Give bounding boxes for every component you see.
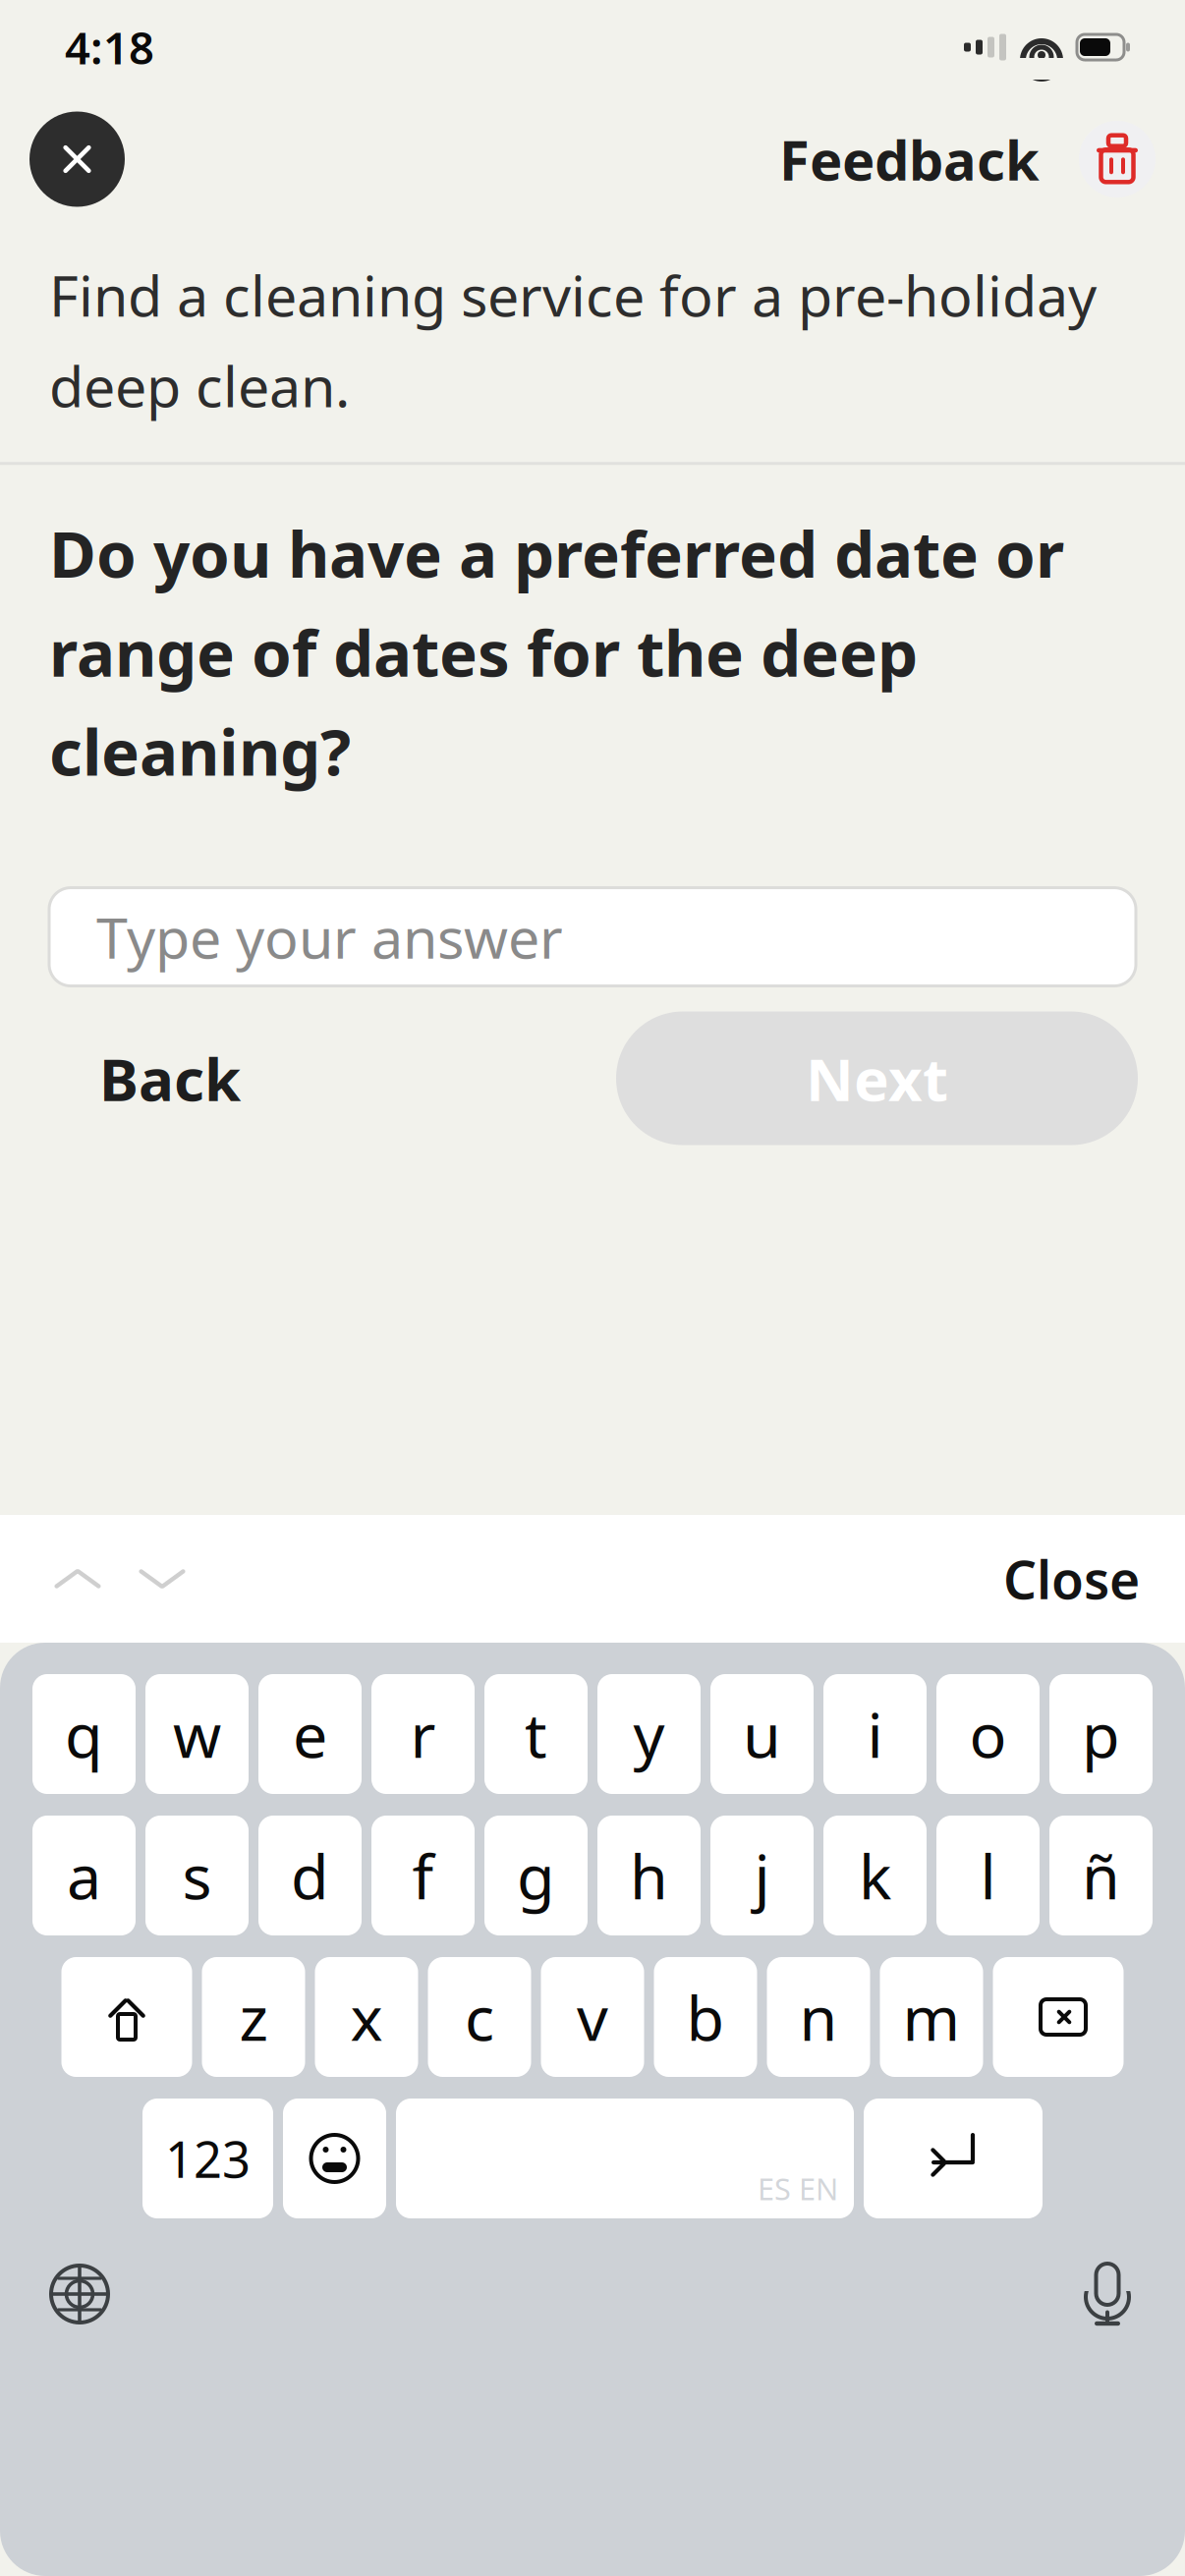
button[interactable]: Next field bbox=[120, 1537, 204, 1621]
staticText: j bbox=[754, 1835, 770, 1916]
staticText: z bbox=[239, 1976, 268, 2058]
staticText: h bbox=[630, 1835, 668, 1916]
button[interactable]: i bbox=[823, 1674, 927, 1794]
button[interactable]: Return bbox=[864, 2099, 1043, 2218]
button[interactable]: w bbox=[145, 1674, 249, 1794]
button[interactable]: g bbox=[484, 1816, 588, 1935]
button[interactable]: z bbox=[202, 1957, 305, 2077]
button[interactable]: Type your answer bbox=[49, 888, 1136, 986]
staticText: n bbox=[799, 1976, 838, 2058]
button[interactable]: u bbox=[710, 1674, 814, 1794]
button[interactable]: l bbox=[936, 1816, 1040, 1935]
button[interactable]: n bbox=[767, 1957, 870, 2077]
button[interactable]: f bbox=[371, 1816, 475, 1935]
staticText: t bbox=[525, 1693, 547, 1775]
staticText: c bbox=[465, 1976, 494, 2058]
button[interactable]: Next keyboard bbox=[49, 2264, 110, 2324]
staticText: Find a cleaning service for a pre-holida… bbox=[49, 257, 1097, 423]
button[interactable]: h bbox=[597, 1816, 701, 1935]
staticText: i bbox=[867, 1693, 883, 1775]
button[interactable]: Delete bbox=[1079, 121, 1156, 197]
staticText: s bbox=[182, 1835, 212, 1916]
button[interactable]: Back bbox=[47, 1012, 293, 1145]
button[interactable]: Shift bbox=[61, 1957, 192, 2077]
button[interactable]: t bbox=[484, 1674, 588, 1794]
staticText: ES EN bbox=[758, 2169, 838, 2209]
staticText: Next bbox=[806, 1039, 948, 1117]
button[interactable]: e bbox=[258, 1674, 362, 1794]
button[interactable]: o bbox=[936, 1674, 1040, 1794]
staticText: ñ bbox=[1082, 1835, 1120, 1916]
button[interactable]: c bbox=[428, 1957, 531, 2077]
button[interactable]: v bbox=[541, 1957, 644, 2077]
staticText: Feedback bbox=[779, 123, 1040, 196]
button[interactable]: Next bbox=[616, 1012, 1138, 1145]
button[interactable]: s bbox=[145, 1816, 249, 1935]
staticText: v bbox=[577, 1976, 608, 2058]
button[interactable]: Space bbox=[396, 2099, 854, 2218]
staticText: k bbox=[859, 1835, 891, 1916]
button[interactable]: a bbox=[32, 1816, 136, 1935]
staticText: r bbox=[410, 1693, 436, 1775]
staticText: q bbox=[65, 1693, 103, 1775]
staticText: e bbox=[293, 1693, 327, 1775]
staticText: Back bbox=[99, 1039, 241, 1117]
staticText: u bbox=[743, 1693, 781, 1775]
button[interactable]: Previous field bbox=[35, 1537, 120, 1621]
button[interactable]: y bbox=[597, 1674, 701, 1794]
staticText: x bbox=[350, 1976, 383, 2058]
button[interactable]: q bbox=[32, 1674, 136, 1794]
staticText: Close bbox=[1003, 1544, 1140, 1614]
button[interactable]: Close bbox=[993, 1537, 1150, 1621]
staticText: m bbox=[903, 1976, 960, 2058]
staticText: o bbox=[969, 1693, 1007, 1775]
button[interactable]: j bbox=[710, 1816, 814, 1935]
button[interactable]: Emoji bbox=[283, 2099, 386, 2218]
staticText: Type your answer bbox=[96, 899, 563, 974]
button[interactable]: Delete bbox=[993, 1957, 1124, 2077]
staticText: 4:18 bbox=[65, 18, 154, 77]
staticText: l bbox=[980, 1835, 996, 1916]
staticText: a bbox=[67, 1835, 101, 1916]
button[interactable]: x bbox=[315, 1957, 418, 2077]
staticText: y bbox=[633, 1693, 665, 1775]
staticText: 123 bbox=[165, 2125, 251, 2192]
button[interactable]: Dictate bbox=[1079, 2260, 1136, 2328]
button[interactable]: b bbox=[654, 1957, 757, 2077]
button[interactable]: k bbox=[823, 1816, 927, 1935]
button[interactable]: ñ bbox=[1049, 1816, 1153, 1935]
staticText: f bbox=[412, 1835, 434, 1916]
button[interactable]: m bbox=[880, 1957, 983, 2077]
staticText: p bbox=[1082, 1693, 1120, 1775]
staticText: d bbox=[291, 1835, 329, 1916]
button[interactable]: p bbox=[1049, 1674, 1153, 1794]
staticText: w bbox=[173, 1693, 221, 1775]
button[interactable]: d bbox=[258, 1816, 362, 1935]
staticText: Do you have a preferred date or range of… bbox=[49, 510, 1064, 793]
button[interactable]: Close bbox=[29, 112, 125, 207]
button[interactable]: 123 bbox=[142, 2099, 273, 2218]
staticText: b bbox=[686, 1976, 725, 2058]
staticText: g bbox=[517, 1835, 555, 1916]
button[interactable]: r bbox=[371, 1674, 475, 1794]
